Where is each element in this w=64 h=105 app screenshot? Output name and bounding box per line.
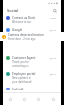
staticText: 12:01 [50,16,57,19]
button[interactable]: Profile [46,93,61,105]
staticText: for your account [12,36,33,40]
button[interactable]: Soft Jeff [3,86,61,92]
staticText: Google [12,28,23,32]
staticText: Customer Agent [12,56,36,60]
staticText: Welcome to our [12,20,32,24]
button[interactable]: Search [52,8,57,13]
button[interactable]: Google [3,26,61,42]
staticText: New updates in [12,76,31,80]
button[interactable]: Chat [17,93,31,105]
staticText: your dashboard [12,80,32,84]
staticText: Soft Jeff [12,88,24,90]
button[interactable]: Customer Agent [3,54,61,70]
staticText: Employee portal [12,72,36,76]
staticText: Jul 12 [50,56,57,59]
staticText: Security alert [12,32,29,36]
staticText: Camera detected motion [8,33,44,37]
button[interactable]: Camera detected motion [0,32,64,41]
staticText: Social [7,8,19,13]
staticText: Thank you for [12,60,29,64]
button[interactable]: Inbox [3,93,17,105]
button[interactable]: Employee portal [3,70,61,86]
button[interactable]: Meet [31,93,46,105]
staticText: Contact us Desk [12,16,36,20]
button[interactable]: Contact us Desk [3,14,61,26]
staticText: Jul 11 [50,72,57,75]
staticText: contacting us [12,64,29,68]
staticText: Jul 14 [50,28,57,31]
staticText: Front door - 2 min ago [8,37,36,41]
